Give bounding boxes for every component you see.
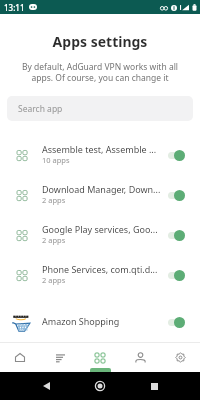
- staticText: Search app: [18, 103, 63, 115]
- button[interactable]: Search app: [7, 96, 193, 121]
- staticText: 2 apps: [42, 195, 66, 205]
- button[interactable]: Home: [0, 343, 40, 372]
- staticText: Assemble test, Assemble ...: [42, 143, 157, 155]
- button[interactable]: Toggle app: [168, 147, 185, 163]
- button[interactable]: Phone Services, com.qti.d...: [0, 255, 200, 295]
- button[interactable]: Back: [38, 378, 54, 394]
- button[interactable]: Google Play services, Goo...: [0, 215, 200, 255]
- button[interactable]: Toggle app: [168, 314, 185, 330]
- button[interactable]: Account: [120, 343, 160, 372]
- staticText: 10 apps: [42, 155, 70, 165]
- button[interactable]: Toggle app: [168, 187, 185, 203]
- button[interactable]: Recent apps: [146, 378, 162, 394]
- staticText: Amazon Shopping: [42, 315, 120, 327]
- staticText: Apps settings: [0, 32, 200, 51]
- staticText: Download Manager, Down...: [42, 183, 161, 195]
- staticText: Google Play services, Goo...: [42, 223, 158, 235]
- button[interactable]: Toggle app: [168, 267, 185, 283]
- button[interactable]: Exclusions: [40, 343, 80, 372]
- staticText: By default, AdGuard VPN works with all a…: [0, 61, 200, 83]
- button[interactable]: Home: [92, 378, 108, 394]
- staticText: 13:11: [4, 2, 25, 13]
- button[interactable]: Amazon Shopping: [0, 295, 200, 349]
- button[interactable]: Settings: [160, 343, 200, 372]
- staticText: 2 apps: [42, 235, 66, 245]
- button[interactable]: Toggle app: [168, 227, 185, 243]
- staticText: 2 apps: [42, 275, 66, 285]
- staticText: Phone Services, com.qti.d...: [42, 263, 158, 275]
- button[interactable]: Assemble test, Assemble ...: [0, 135, 200, 175]
- button[interactable]: Apps: [80, 343, 120, 372]
- button[interactable]: Download Manager, Down...: [0, 175, 200, 215]
